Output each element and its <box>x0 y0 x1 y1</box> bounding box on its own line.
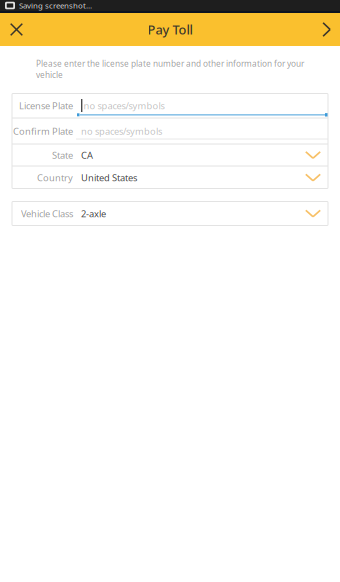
staticText: Confirm Plate <box>13 125 73 137</box>
staticText: United States <box>81 171 137 184</box>
staticText: no spaces/symbols <box>81 125 162 137</box>
button[interactable]: Country <box>12 166 328 188</box>
staticText: Vehicle Class <box>21 207 73 220</box>
button[interactable]: Close <box>0 13 33 46</box>
staticText: CA <box>81 149 93 161</box>
button[interactable]: Confirm Plate <box>12 118 328 143</box>
staticText: no spaces/symbols <box>83 99 164 112</box>
staticText: Saving screenshot... <box>19 0 92 11</box>
staticText: License Plate <box>19 99 73 112</box>
button[interactable]: Continue <box>313 13 340 46</box>
staticText: Please enter the license plate number an… <box>36 58 304 80</box>
staticText: State <box>52 149 73 161</box>
staticText: Country <box>37 171 73 184</box>
staticText: 2-axle <box>81 207 106 220</box>
button[interactable]: State <box>12 144 328 165</box>
button[interactable]: License Plate <box>12 93 328 117</box>
button[interactable]: Vehicle Class <box>12 201 328 225</box>
staticText: Pay Toll <box>147 21 192 38</box>
